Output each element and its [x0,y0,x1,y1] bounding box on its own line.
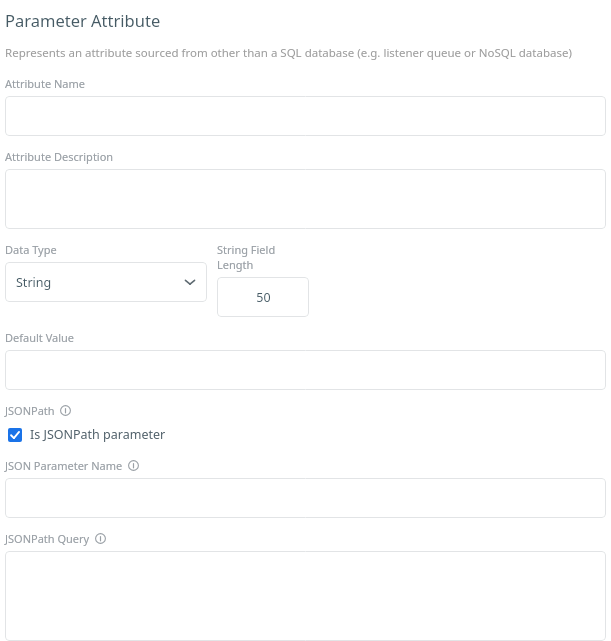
button[interactable]: String [5,262,207,302]
staticText: 50 [256,289,271,306]
staticText: String Field Length [217,242,309,272]
staticText: Attribute Description [5,149,114,164]
button[interactable] [5,96,606,136]
other: More information [60,405,71,416]
staticText: Is JSONPath parameter [30,426,166,443]
staticText: JSONPath [5,403,55,418]
staticText: Attribute Name [5,76,85,91]
staticText: Represents an attribute sourced from oth… [5,45,572,61]
button[interactable] [5,478,606,518]
staticText: String [16,274,52,291]
button[interactable]: 50 [217,277,309,317]
button[interactable] [5,551,606,641]
staticText: JSON Parameter Name [5,458,123,473]
button[interactable]: Is JSONPath parameter [5,425,166,444]
staticText: JSONPath Query [5,531,90,546]
staticText: Parameter Attribute [5,9,161,31]
other: More information [95,533,106,544]
other: More information [128,460,139,471]
staticText: Data Type [5,242,57,257]
button[interactable] [5,169,606,229]
staticText: Default Value [5,330,75,345]
button[interactable] [5,350,606,390]
